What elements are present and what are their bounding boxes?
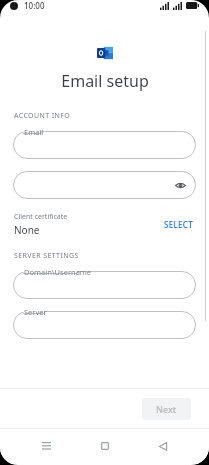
button[interactable]: Next [142,398,191,420]
staticText: Email setup [61,70,149,92]
staticText: SELECT [164,219,193,230]
staticText: Email [24,127,44,137]
staticText: 10:00 [24,0,45,11]
button[interactable]: Show password [174,179,187,192]
button[interactable]: Recents [34,434,58,458]
button[interactable]: Back [151,434,175,458]
button[interactable]: Show password [13,171,196,199]
staticText: Client certificate [14,212,68,222]
button[interactable]: Client certificate [14,211,195,237]
button[interactable]: Server [13,311,196,339]
staticText: Server [24,307,47,317]
staticText: None [14,223,40,237]
button[interactable]: Domain\Username [13,271,196,299]
staticText: SERVER SETTINGS [14,251,79,261]
staticText: Domain\Username [24,267,92,277]
button[interactable]: SELECT [162,216,195,233]
button[interactable]: Email [13,131,196,159]
button[interactable]: Home [93,434,117,458]
staticText: ACCOUNT INFO [14,111,71,121]
staticText: Next [156,403,177,415]
